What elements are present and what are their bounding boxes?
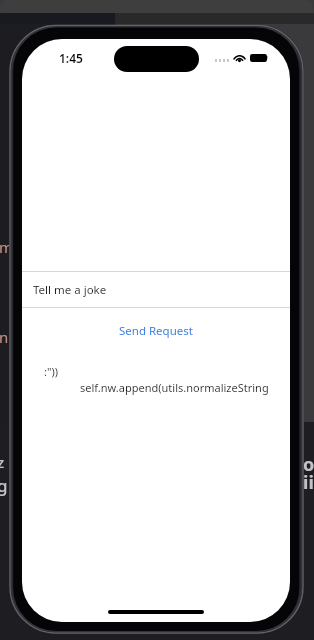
staticText: Tell me a joke <box>33 282 107 298</box>
staticText: z <box>0 452 5 472</box>
button[interactable]: Send Request <box>22 320 290 342</box>
staticText: g <box>0 474 8 497</box>
staticText: m <box>0 237 14 257</box>
other: Wi-Fi <box>233 53 246 62</box>
staticText: n <box>0 327 9 347</box>
staticText: o <box>303 452 314 477</box>
staticText: self.nw.append(utils.normalizeString <box>80 380 269 395</box>
staticText: 1:45 <box>59 50 83 66</box>
button[interactable]: Tell me a joke <box>22 271 290 308</box>
staticText: ii <box>303 470 314 495</box>
staticText: :")) <box>44 364 59 379</box>
staticText: Send Request <box>119 323 193 339</box>
